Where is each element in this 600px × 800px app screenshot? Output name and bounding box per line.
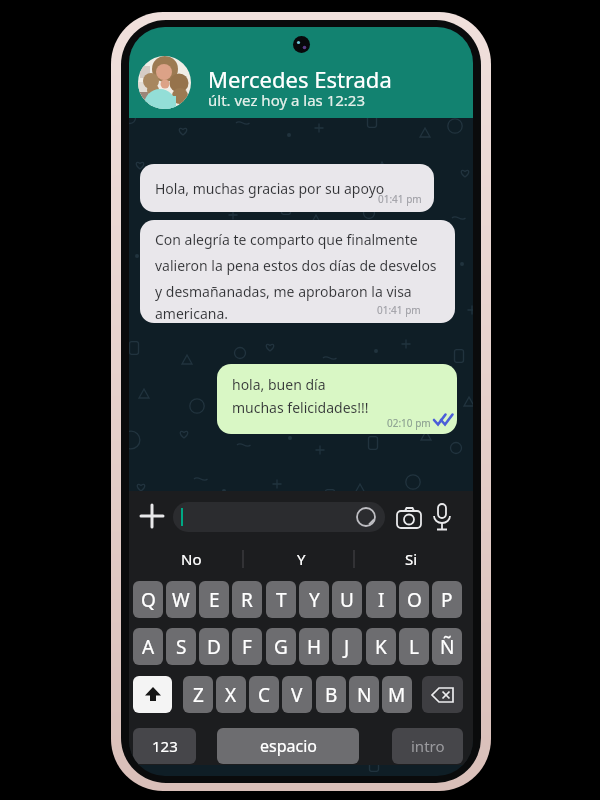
button[interactable]: O bbox=[399, 581, 429, 618]
staticText: T bbox=[276, 587, 287, 613]
staticText: valieron la pena estos dos días de desve… bbox=[155, 256, 437, 275]
staticText: E bbox=[209, 587, 220, 613]
staticText: No bbox=[181, 549, 202, 569]
staticText: F bbox=[242, 634, 252, 660]
button[interactable]: E bbox=[199, 581, 229, 618]
button[interactable]: H bbox=[299, 628, 329, 665]
staticText: D bbox=[207, 634, 221, 660]
button[interactable]: Ñ bbox=[432, 628, 462, 665]
button[interactable]: L bbox=[399, 628, 429, 665]
button[interactable]: Q bbox=[133, 581, 163, 618]
staticText: J bbox=[344, 634, 350, 660]
button[interactable]: Z bbox=[183, 676, 213, 713]
staticText: últ. vez hoy a las 12:23 bbox=[208, 90, 365, 110]
button[interactable]: No bbox=[139, 543, 243, 575]
button[interactable]: Con alegría te comparto que finalmente bbox=[140, 220, 455, 323]
staticText: intro bbox=[411, 736, 445, 756]
button[interactable]: D bbox=[199, 628, 229, 665]
button[interactable]: R bbox=[232, 581, 262, 618]
staticText: 123 bbox=[152, 736, 178, 756]
staticText: muchas felicidades!!! bbox=[232, 398, 369, 417]
staticText: Z bbox=[193, 682, 204, 708]
staticText: B bbox=[325, 682, 338, 708]
button[interactable]: Y bbox=[249, 543, 353, 575]
staticText: Y bbox=[309, 587, 320, 613]
staticText: Si bbox=[405, 549, 418, 569]
button[interactable]: P bbox=[432, 581, 462, 618]
staticText: 01:41 pm bbox=[378, 192, 422, 206]
staticText: Y bbox=[297, 549, 306, 569]
staticText: X bbox=[225, 682, 237, 708]
staticText: O bbox=[407, 587, 422, 613]
staticText: C bbox=[258, 682, 271, 708]
button[interactable]: S bbox=[166, 628, 196, 665]
staticText: H bbox=[307, 634, 322, 660]
staticText: Mercedes Estrada bbox=[208, 64, 392, 94]
staticText: Q bbox=[141, 587, 156, 613]
staticText: L bbox=[409, 634, 419, 660]
button[interactable]: Hola, muchas gracias por su apoyo bbox=[140, 164, 434, 212]
staticText: G bbox=[274, 634, 288, 660]
button[interactable] bbox=[396, 507, 422, 529]
staticText: K bbox=[375, 634, 387, 660]
button[interactable]: T bbox=[266, 581, 296, 618]
staticText: A bbox=[142, 634, 155, 660]
staticText: americana. bbox=[155, 304, 229, 323]
staticText: 02:10 pm bbox=[387, 416, 431, 430]
staticText: N bbox=[357, 682, 372, 708]
button[interactable] bbox=[139, 503, 165, 529]
button[interactable]: U bbox=[332, 581, 362, 618]
staticText: 01:41 pm bbox=[377, 303, 421, 317]
staticText: Con alegría te comparto que finalmente bbox=[155, 230, 418, 249]
button[interactable]: intro bbox=[392, 728, 463, 764]
button[interactable]: X bbox=[216, 676, 246, 713]
staticText: V bbox=[291, 682, 303, 708]
button[interactable] bbox=[422, 676, 463, 713]
staticText: U bbox=[340, 587, 354, 613]
button[interactable]: F bbox=[232, 628, 262, 665]
button[interactable] bbox=[133, 676, 172, 713]
staticText: W bbox=[172, 587, 190, 613]
staticText: P bbox=[441, 587, 453, 613]
staticText: M bbox=[388, 682, 406, 708]
button[interactable]: K bbox=[366, 628, 396, 665]
staticText: y desmañanadas, me aprobaron la visa bbox=[155, 282, 412, 301]
staticText: Ñ bbox=[440, 634, 455, 660]
button[interactable]: N bbox=[349, 676, 379, 713]
staticText: I bbox=[378, 587, 385, 613]
staticText: Hola, muchas gracias por su apoyo bbox=[155, 179, 385, 198]
button[interactable]: J bbox=[332, 628, 362, 665]
button[interactable]: M bbox=[382, 676, 412, 713]
button[interactable] bbox=[173, 502, 385, 532]
button[interactable]: C bbox=[249, 676, 279, 713]
button[interactable] bbox=[138, 56, 191, 109]
button[interactable]: W bbox=[166, 581, 196, 618]
button[interactable]: A bbox=[133, 628, 163, 665]
staticText: R bbox=[241, 587, 253, 613]
button[interactable]: 123 bbox=[133, 728, 196, 764]
button[interactable] bbox=[431, 503, 453, 532]
button[interactable]: Y bbox=[299, 581, 329, 618]
button[interactable]: G bbox=[266, 628, 296, 665]
staticText: hola, buen día bbox=[232, 375, 326, 394]
staticText: espacio bbox=[260, 735, 317, 757]
button[interactable]: V bbox=[282, 676, 312, 713]
button[interactable]: hola, buen día bbox=[217, 364, 457, 434]
staticText: S bbox=[176, 634, 187, 660]
button[interactable]: B bbox=[316, 676, 346, 713]
button[interactable]: I bbox=[366, 581, 396, 618]
button[interactable]: espacio bbox=[217, 728, 359, 764]
button[interactable]: Si bbox=[359, 543, 463, 575]
